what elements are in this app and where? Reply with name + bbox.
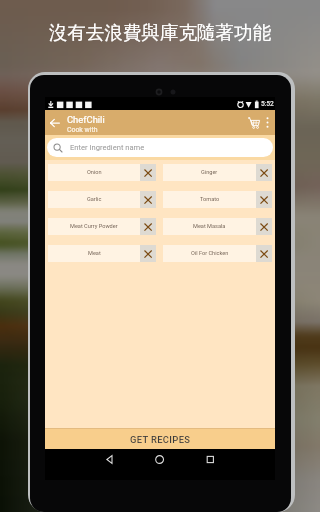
staticText: Onion: [87, 169, 102, 176]
button[interactable]: Meat Curry Powder: [48, 218, 140, 235]
staticText: Garlic: [87, 196, 102, 203]
button[interactable]: Shopping cart: [242, 110, 265, 135]
button[interactable]: Remove Ginger: [256, 164, 272, 181]
button[interactable]: Ginger: [163, 164, 256, 181]
button[interactable]: Tomato: [163, 191, 256, 208]
button[interactable]: GET RECIPES: [45, 429, 275, 449]
staticText: Cook with: [67, 126, 98, 134]
button[interactable]: Remove Meat Curry Powder: [140, 218, 156, 235]
button[interactable]: Remove Meat Masala: [256, 218, 272, 235]
button[interactable]: Back: [44, 110, 66, 135]
staticText: ChefChili: [67, 114, 105, 125]
button[interactable]: Enter Ingredient name: [47, 138, 273, 157]
staticText: 5:52: [261, 100, 274, 108]
staticText: Ginger: [201, 169, 218, 176]
button[interactable]: Onion: [48, 164, 140, 181]
button[interactable]: Meat Masala: [163, 218, 256, 235]
staticText: GET RECIPES: [130, 434, 191, 445]
staticText: Tomato: [200, 196, 220, 203]
button[interactable]: Remove Meat: [140, 245, 156, 262]
button[interactable]: Remove Oil For Chicken: [256, 245, 272, 262]
staticText: Meat Masala: [193, 223, 226, 230]
staticText: Oil For Chicken: [191, 250, 229, 257]
button[interactable]: Meat: [48, 245, 140, 262]
staticText: Meat: [88, 250, 101, 257]
staticText: Meat Curry Powder: [70, 223, 118, 230]
button[interactable]: Garlic: [48, 191, 140, 208]
button[interactable]: Remove Garlic: [140, 191, 156, 208]
staticText: 沒有去浪費與庫克隨著功能: [0, 21, 320, 44]
button[interactable]: More options: [259, 110, 275, 135]
staticText: Enter Ingredient name: [70, 143, 145, 152]
button[interactable]: Oil For Chicken: [163, 245, 256, 262]
button[interactable]: Remove Tomato: [256, 191, 272, 208]
button[interactable]: Remove Onion: [140, 164, 156, 181]
